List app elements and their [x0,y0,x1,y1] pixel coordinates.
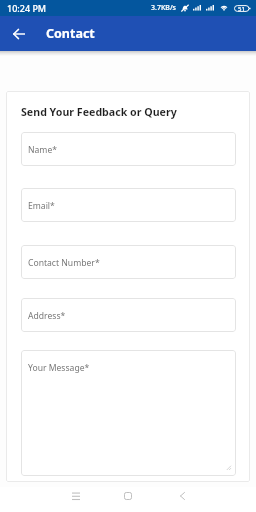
button[interactable]: Email* [21,188,236,222]
button[interactable]: Name* [21,132,236,166]
staticText: Your Message* [28,362,90,374]
staticText: Contact [46,25,95,42]
staticText: 3.7KB/s [151,3,177,13]
button[interactable]: Your Message* [21,350,236,476]
staticText: Name* [28,144,57,156]
staticText: Send Your Feedback or Query [21,105,177,120]
button[interactable]: Back [0,16,35,51]
staticText: Contact Number* [28,257,100,269]
staticText: Address* [28,310,66,322]
button[interactable]: Back [158,487,207,512]
staticText: 51 [238,5,245,13]
button[interactable]: Home [103,487,152,512]
button[interactable]: Recents [51,487,100,512]
button[interactable]: Address* [21,298,236,332]
staticText: Email* [28,200,55,212]
staticText: 10:24 PM [7,2,47,14]
button[interactable]: Contact Number* [21,245,236,279]
